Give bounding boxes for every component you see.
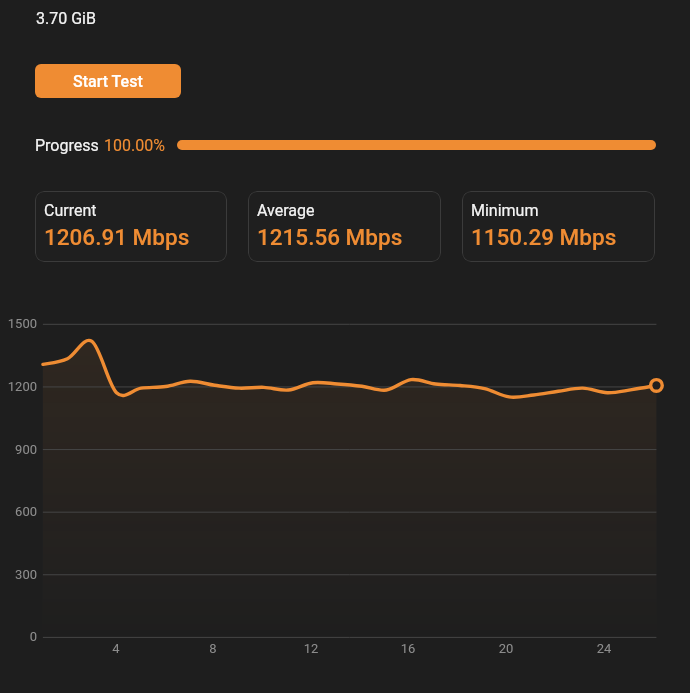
staticText: 4: [96, 641, 136, 656]
staticText: Minimum: [471, 201, 539, 220]
staticText: 3.70 GiB: [36, 9, 96, 28]
staticText: Start Test: [73, 72, 143, 91]
staticText: 1200: [0, 379, 37, 394]
staticText: 900: [0, 442, 37, 457]
staticText: 1206.91 Mbps: [44, 224, 190, 250]
staticText: 12: [291, 641, 331, 656]
button[interactable]: Minimum: [462, 191, 655, 262]
staticText: 300: [0, 567, 37, 582]
staticText: 100.00%: [104, 136, 165, 155]
staticText: 20: [486, 641, 526, 656]
button[interactable]: Start Test: [35, 64, 181, 98]
staticText: Average: [257, 201, 315, 220]
staticText: 1150.29 Mbps: [471, 224, 617, 250]
button[interactable]: Average: [248, 191, 441, 262]
staticText: 16: [388, 641, 428, 656]
button[interactable]: Current: [35, 191, 227, 262]
staticText: 24: [584, 641, 624, 656]
staticText: Current: [44, 201, 97, 220]
staticText: 1215.56 Mbps: [257, 224, 403, 250]
staticText: 8: [193, 641, 233, 656]
staticText: 0: [0, 629, 37, 644]
staticText: 600: [0, 504, 37, 519]
staticText: Progress: [35, 136, 99, 155]
staticText: 1500: [0, 316, 37, 331]
